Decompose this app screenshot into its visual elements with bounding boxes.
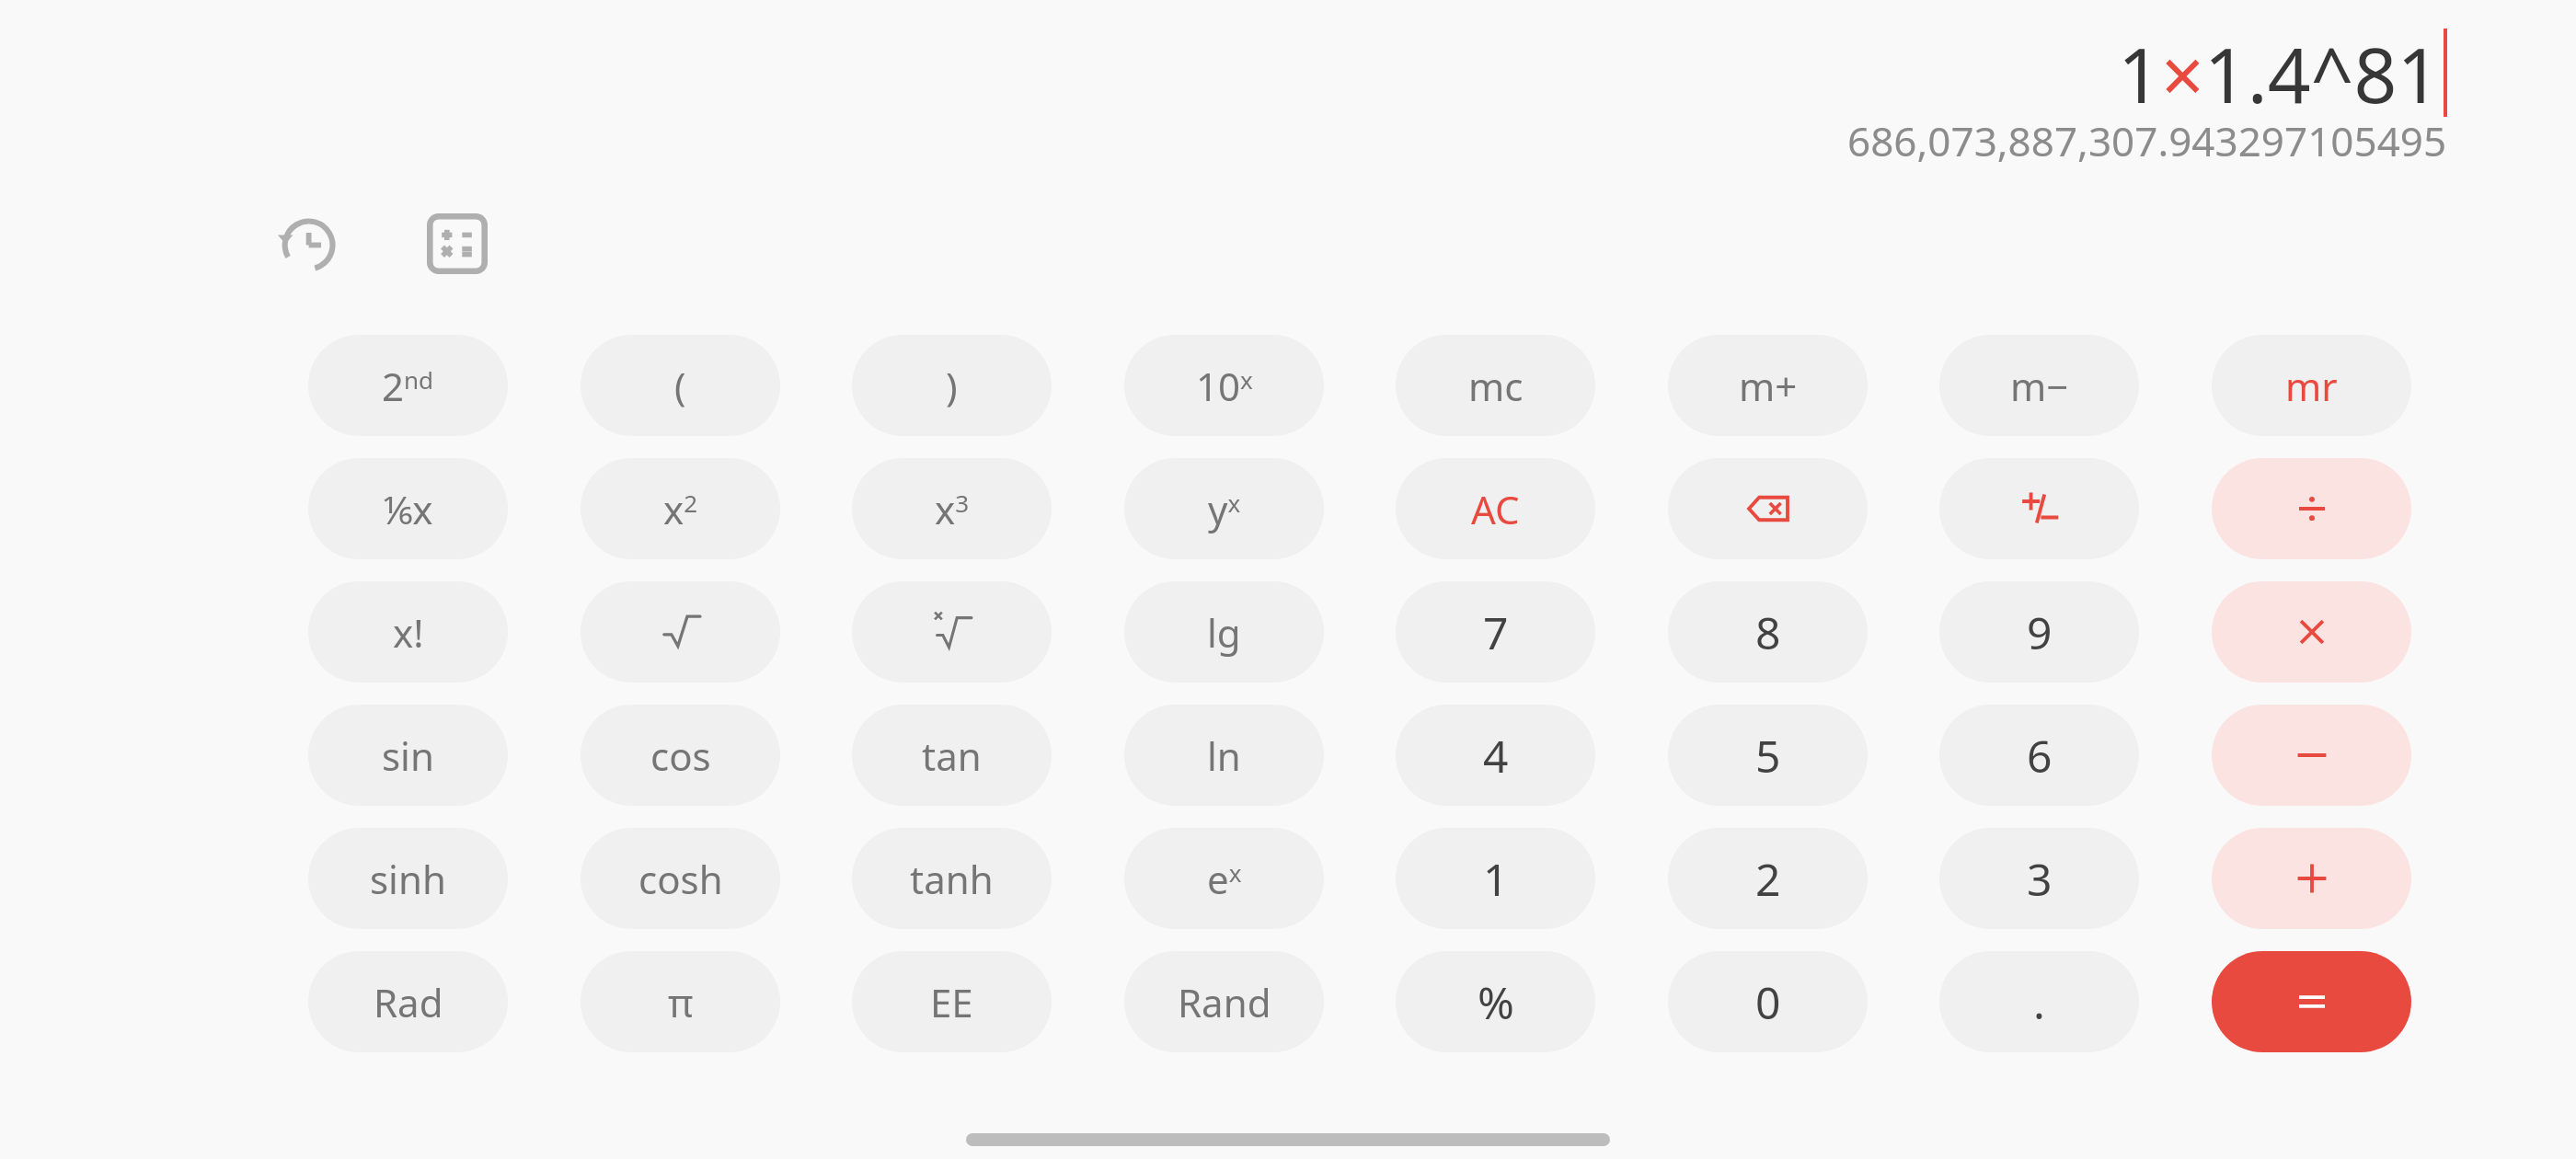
button[interactable]: 0 <box>1668 951 1868 1052</box>
button[interactable]: sin <box>308 705 508 806</box>
staticText: mc <box>1468 360 1524 412</box>
button[interactable]: History <box>265 203 346 284</box>
button[interactable]: cos <box>581 705 780 806</box>
staticText: ⅙x <box>383 483 433 535</box>
button[interactable]: EE <box>852 951 1052 1052</box>
button[interactable]: sinh <box>308 828 508 929</box>
staticText: 3 <box>2027 849 2053 909</box>
button[interactable]: Plus <box>2212 828 2411 929</box>
button[interactable]: 7 <box>1396 581 1595 683</box>
button[interactable]: Plus minus <box>1939 458 2139 559</box>
staticText: 0 <box>1755 972 1781 1032</box>
button[interactable]: . <box>1939 951 2139 1052</box>
button[interactable]: Rad <box>308 951 508 1052</box>
staticText: sinh <box>370 853 446 905</box>
button[interactable]: Minus <box>2212 705 2411 806</box>
staticText: m− <box>2010 360 2069 412</box>
staticText: ( <box>674 360 686 412</box>
button[interactable]: Rand <box>1124 951 1324 1052</box>
button[interactable]: tanh <box>852 828 1052 929</box>
button[interactable]: 8 <box>1668 581 1868 683</box>
staticText: lg <box>1207 606 1241 659</box>
button[interactable]: Square root <box>581 581 780 683</box>
button[interactable]: Formulas <box>420 207 494 281</box>
staticText: Rand <box>1178 976 1271 1028</box>
staticText: tan <box>922 729 982 782</box>
staticText: 8 <box>1755 602 1781 662</box>
staticText: EE <box>930 976 973 1028</box>
staticText: 9 <box>2027 602 2053 662</box>
staticText: ) <box>946 360 958 412</box>
staticText: 2nd <box>382 360 434 412</box>
button[interactable]: Divide <box>2212 458 2411 559</box>
staticText: ex <box>1207 853 1242 905</box>
staticText: 10x <box>1196 360 1253 412</box>
button[interactable]: ex <box>1124 828 1324 929</box>
staticText: x2 <box>663 483 698 535</box>
staticText: tanh <box>910 853 994 905</box>
staticText: 686,073,887,307.943297105495 <box>1847 113 2447 168</box>
staticText: ln <box>1207 729 1241 782</box>
button[interactable]: 3 <box>1939 828 2139 929</box>
staticText: % <box>1478 972 1514 1032</box>
button[interactable]: m− <box>1939 335 2139 436</box>
button[interactable]: 5 <box>1668 705 1868 806</box>
staticText: m+ <box>1739 360 1798 412</box>
staticText: 5 <box>1755 726 1781 786</box>
staticText: 1×1.4^81 <box>2118 22 2441 123</box>
staticText: π <box>668 976 694 1028</box>
button[interactable]: x2 <box>581 458 780 559</box>
staticText: x3 <box>935 483 970 535</box>
button[interactable]: lg <box>1124 581 1324 683</box>
button[interactable]: 1 <box>1396 828 1595 929</box>
staticText: cosh <box>638 853 723 905</box>
button[interactable]: mr <box>2212 335 2411 436</box>
button[interactable]: ln <box>1124 705 1324 806</box>
button[interactable]: 9 <box>1939 581 2139 683</box>
staticText: 2 <box>1755 849 1781 909</box>
staticText: 7 <box>1483 602 1509 662</box>
button[interactable]: Multiply <box>2212 581 2411 683</box>
button[interactable]: Equals <box>2212 951 2411 1052</box>
button[interactable]: ( <box>581 335 780 436</box>
button[interactable]: 6 <box>1939 705 2139 806</box>
staticText: cos <box>650 729 711 782</box>
button[interactable]: AC <box>1396 458 1595 559</box>
button[interactable]: x3 <box>852 458 1052 559</box>
button[interactable]: ⅙x <box>308 458 508 559</box>
button[interactable]: yx <box>1124 458 1324 559</box>
staticText: x! <box>393 606 424 659</box>
button[interactable]: x! <box>308 581 508 683</box>
staticText: Rad <box>374 976 443 1028</box>
button[interactable]: cosh <box>581 828 780 929</box>
staticText: . <box>2033 972 2045 1032</box>
button[interactable]: 10x <box>1124 335 1324 436</box>
staticText: sin <box>382 729 434 782</box>
button[interactable]: mc <box>1396 335 1595 436</box>
staticText: AC <box>1471 483 1520 535</box>
staticText: yx <box>1208 483 1241 535</box>
staticText: 1 <box>1483 849 1509 909</box>
button[interactable]: 4 <box>1396 705 1595 806</box>
button[interactable]: 2 <box>1668 828 1868 929</box>
staticText: mr <box>2285 360 2338 412</box>
button[interactable]: % <box>1396 951 1595 1052</box>
button[interactable]: tan <box>852 705 1052 806</box>
button[interactable]: π <box>581 951 780 1052</box>
staticText: 6 <box>2027 726 2053 786</box>
button[interactable]: m+ <box>1668 335 1868 436</box>
button[interactable]: 2nd <box>308 335 508 436</box>
button[interactable]: Nth root <box>852 581 1052 683</box>
button[interactable]: ) <box>852 335 1052 436</box>
button[interactable]: Backspace <box>1668 458 1868 559</box>
staticText: 4 <box>1483 726 1509 786</box>
